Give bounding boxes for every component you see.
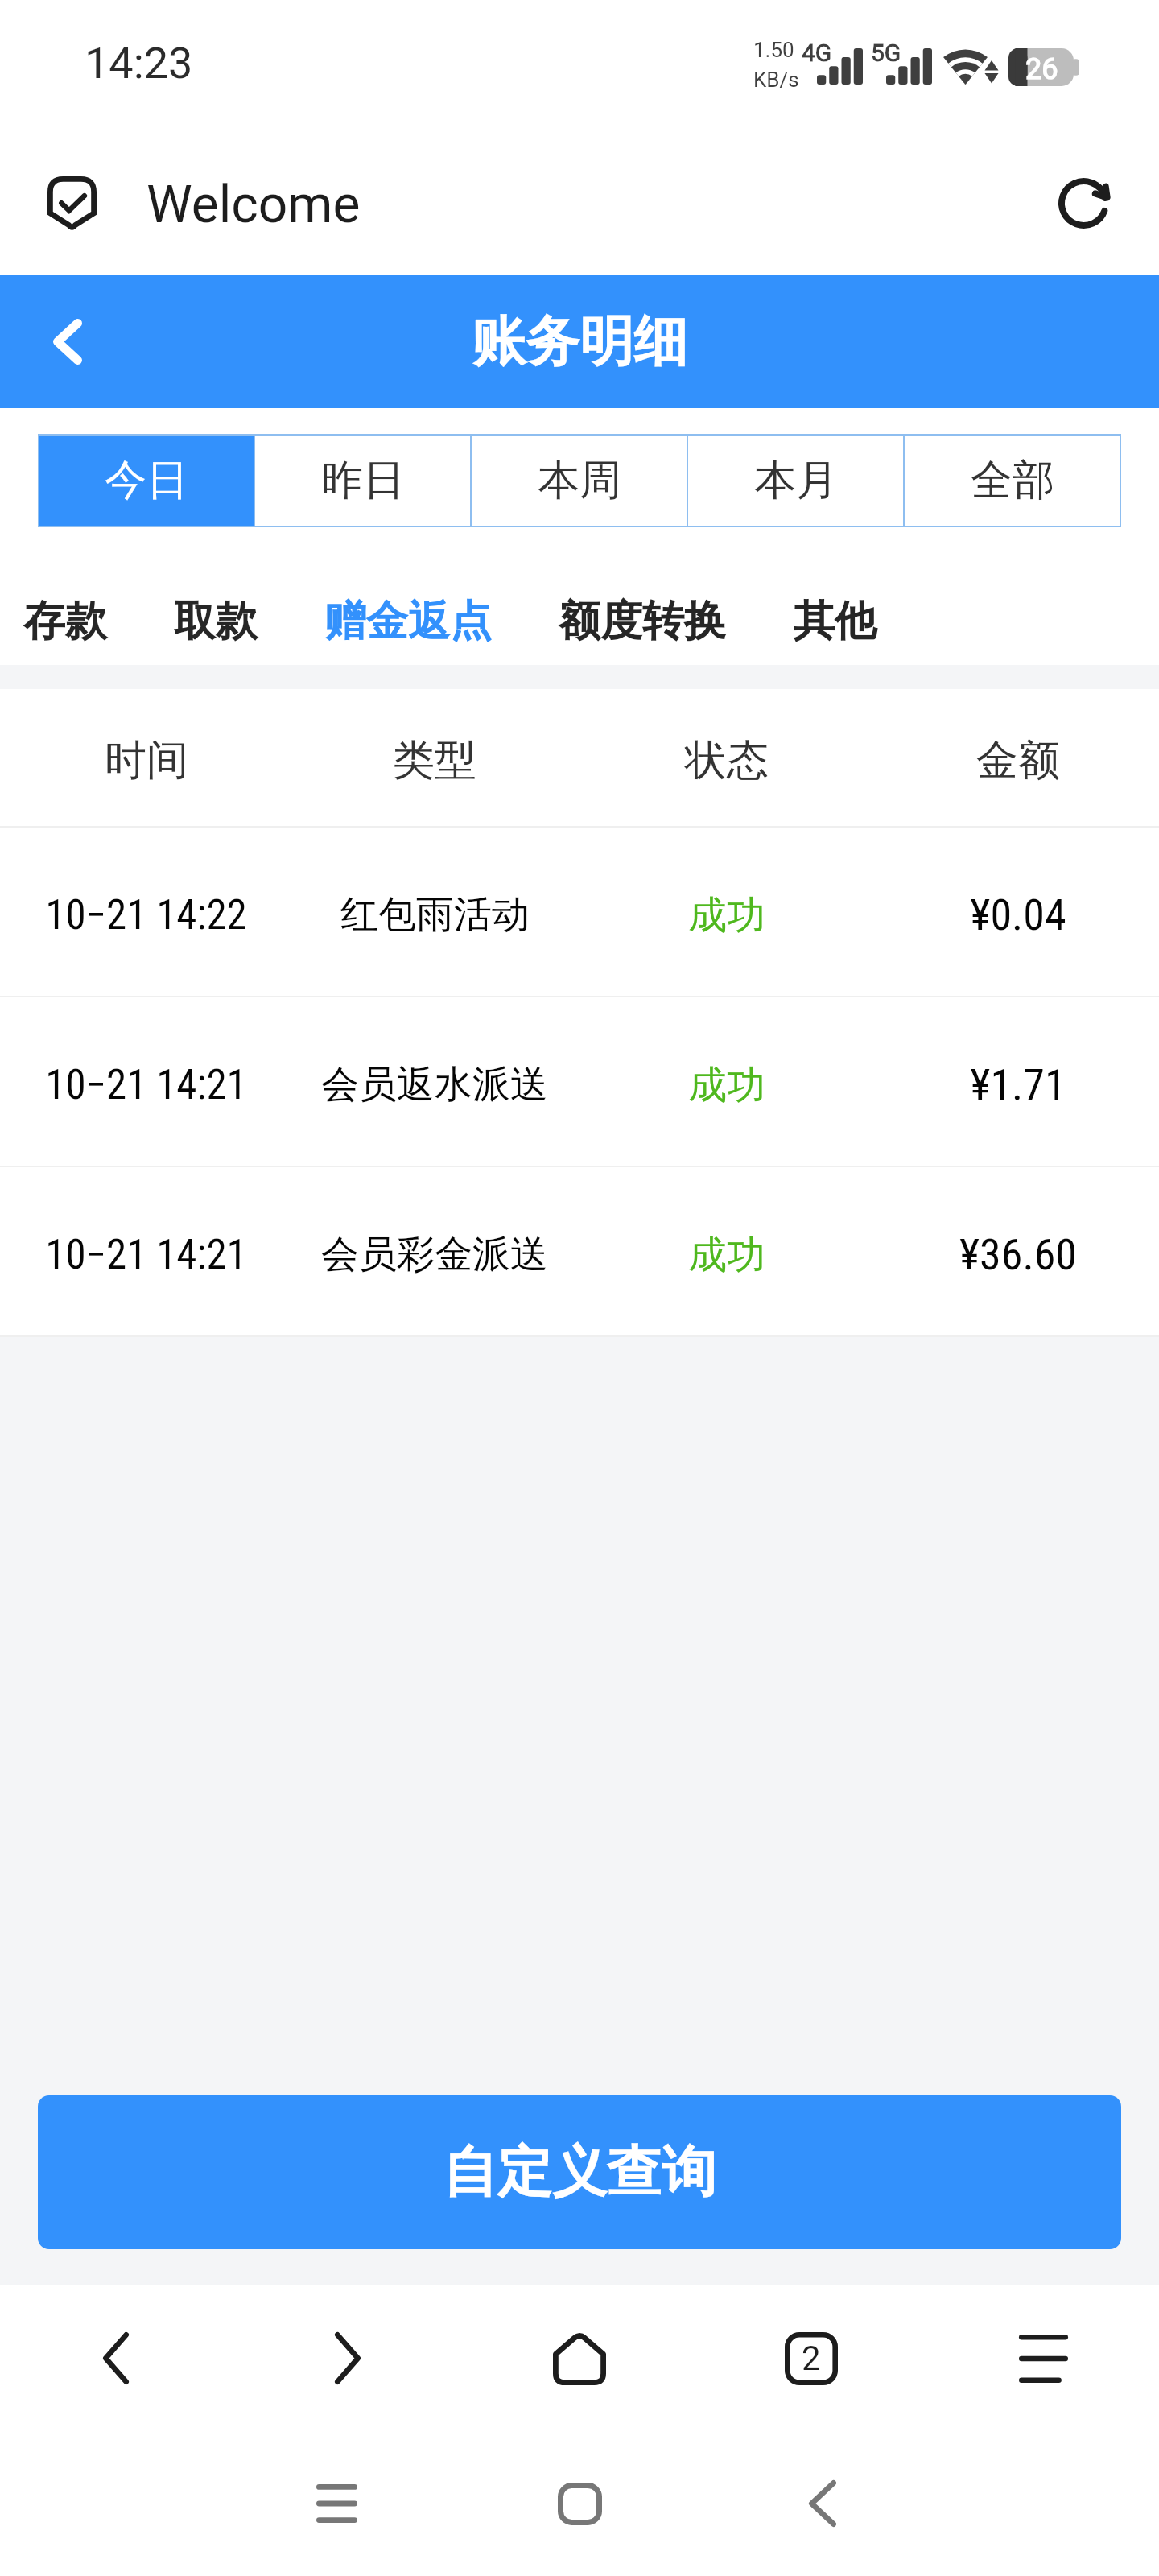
button[interactable]: 10−21 14:22 xyxy=(0,828,1159,996)
button[interactable]: 昨日 xyxy=(255,436,470,526)
staticText: 红包雨活动 xyxy=(340,891,530,939)
staticText: ¥0.04 xyxy=(970,890,1066,940)
button[interactable]: Recents xyxy=(264,2433,409,2576)
button[interactable]: Refresh xyxy=(1046,165,1121,241)
staticText: 其他 xyxy=(793,595,876,648)
staticText: 会员返水派送 xyxy=(321,1061,548,1108)
button[interactable]: 10−21 14:21 xyxy=(0,997,1159,1166)
button[interactable]: 额度转换 xyxy=(559,595,726,648)
staticText: 金额 xyxy=(976,734,1060,787)
button[interactable]: Forward xyxy=(232,2285,464,2433)
button[interactable]: 其他 xyxy=(793,595,876,648)
button[interactable]: 存款 xyxy=(23,595,107,648)
staticText: 10−21 14:21 xyxy=(45,1231,247,1279)
button[interactable]: Back xyxy=(0,2285,232,2433)
staticText: 成功 xyxy=(688,891,765,939)
staticText: 14:23 xyxy=(85,38,193,89)
staticText: 账务明细 xyxy=(472,308,687,375)
staticText: 类型 xyxy=(393,734,476,787)
staticText: 全部 xyxy=(971,454,1054,507)
staticText: 自定义查询 xyxy=(443,2138,716,2207)
button[interactable]: Tabs xyxy=(695,2285,927,2433)
button[interactable]: 取款 xyxy=(174,595,258,648)
staticText: 存款 xyxy=(23,595,107,648)
staticText: 赠金返点 xyxy=(324,595,492,648)
staticText: 状态 xyxy=(685,734,769,787)
staticText: 取款 xyxy=(174,595,258,648)
staticText: 4G xyxy=(802,39,832,67)
button[interactable]: 10−21 14:21 xyxy=(0,1167,1159,1335)
staticText: 10−21 14:22 xyxy=(45,891,247,939)
staticText: 额度转换 xyxy=(559,595,726,648)
button[interactable]: 全部 xyxy=(905,436,1120,526)
button[interactable]: Home xyxy=(464,2285,695,2433)
staticText: 2 xyxy=(802,2339,821,2378)
button[interactable]: Home xyxy=(507,2433,652,2576)
staticText: 昨日 xyxy=(321,454,405,507)
button[interactable]: 本月 xyxy=(688,436,903,526)
staticText: 时间 xyxy=(105,734,188,787)
staticText: 1.50 xyxy=(753,38,794,62)
staticText: 本周 xyxy=(538,454,621,507)
staticText: 10−21 14:21 xyxy=(45,1061,247,1109)
staticText: ¥36.60 xyxy=(959,1229,1077,1280)
staticText: 26 xyxy=(1025,52,1058,86)
staticText: 成功 xyxy=(688,1231,765,1279)
button[interactable]: 本周 xyxy=(472,436,687,526)
staticText: 本月 xyxy=(754,454,838,507)
button[interactable]: Back xyxy=(750,2433,895,2576)
button[interactable]: 自定义查询 xyxy=(38,2095,1121,2249)
button[interactable]: Back xyxy=(21,295,114,388)
staticText: 成功 xyxy=(688,1061,765,1109)
staticText: Welcome xyxy=(146,175,361,235)
button[interactable]: 赠金返点 xyxy=(324,595,492,648)
staticText: ¥1.71 xyxy=(970,1059,1066,1110)
staticText: 今日 xyxy=(105,454,188,507)
button[interactable]: 今日 xyxy=(39,436,254,526)
staticText: 5G xyxy=(871,39,901,67)
staticText: 会员彩金派送 xyxy=(321,1231,548,1278)
button[interactable]: Menu xyxy=(927,2285,1159,2433)
staticText: KB/s xyxy=(753,68,799,92)
